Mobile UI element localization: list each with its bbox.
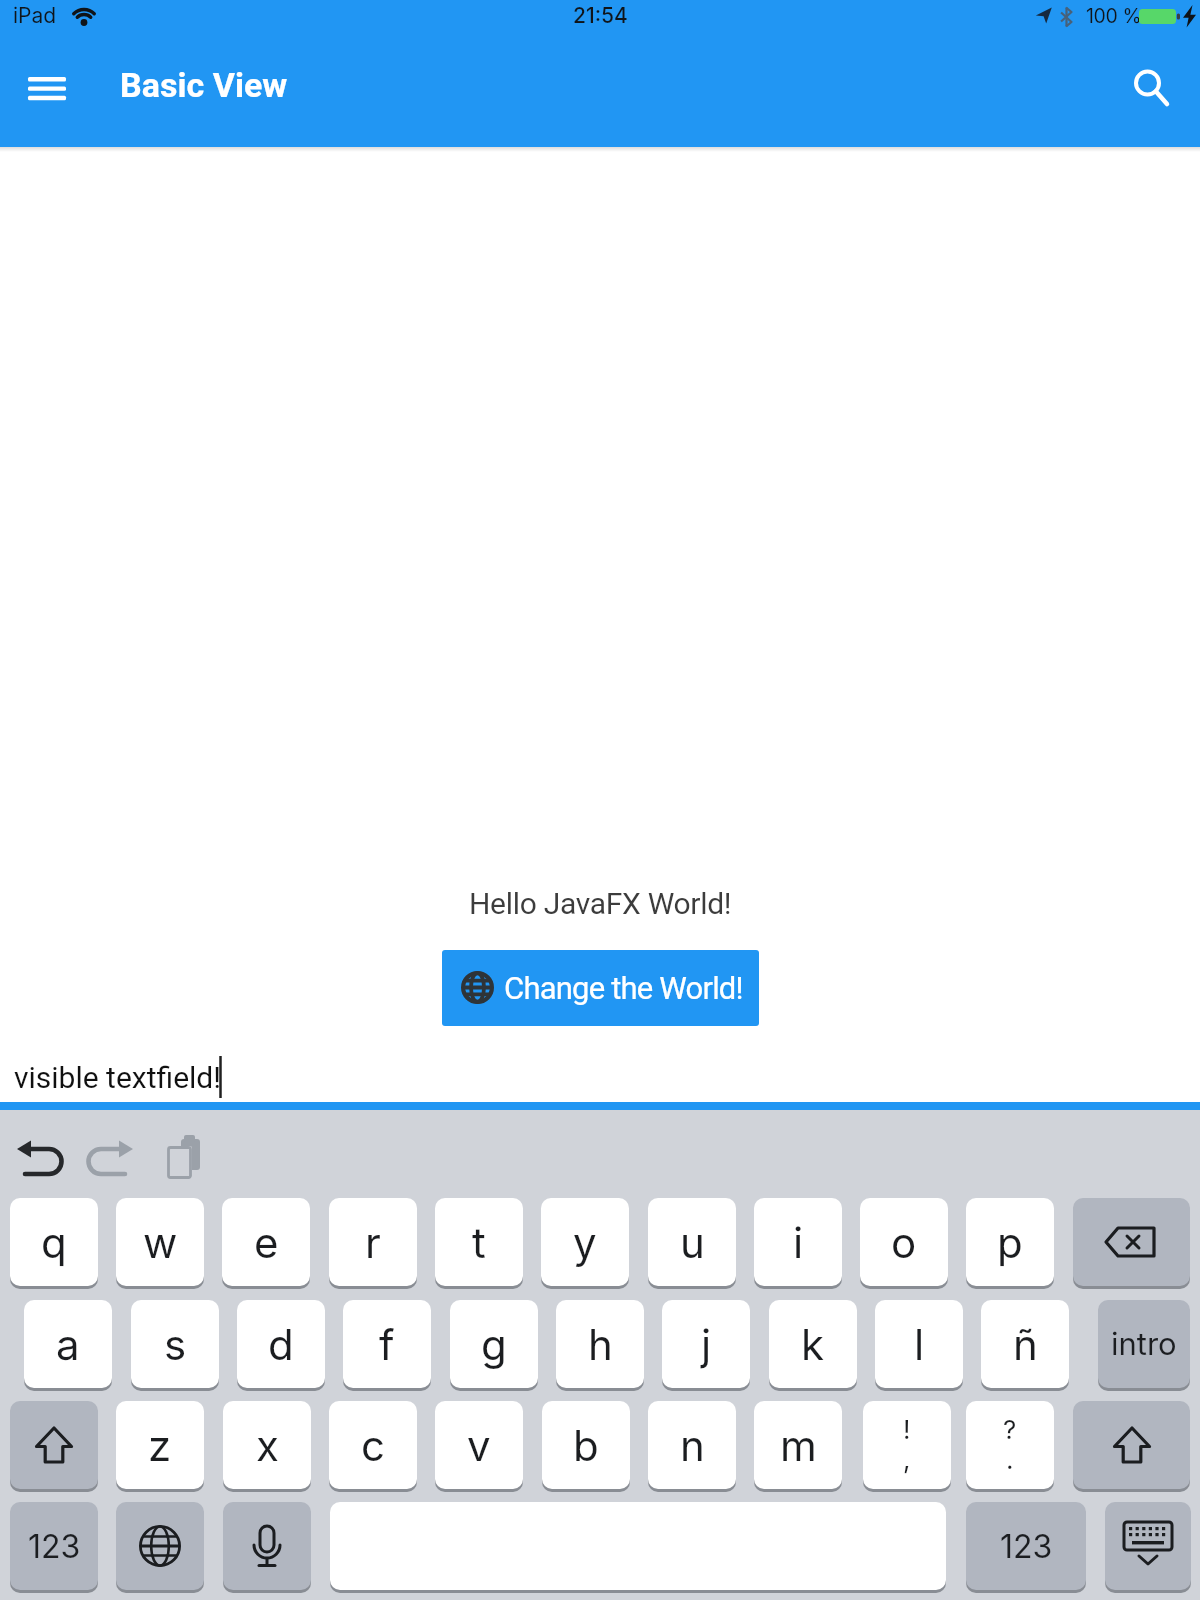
staticText: 123	[28, 1527, 81, 1566]
button[interactable]: k	[769, 1300, 857, 1388]
button[interactable]: intro	[1098, 1300, 1190, 1388]
button[interactable]: j	[662, 1300, 750, 1388]
staticText: .	[1006, 1444, 1014, 1475]
staticText: Change the World!	[504, 970, 743, 1006]
button[interactable]: z	[116, 1401, 204, 1489]
staticText: intro	[1111, 1325, 1177, 1363]
button[interactable]: f	[343, 1300, 431, 1388]
button[interactable]	[223, 1502, 311, 1590]
button[interactable]	[84, 1132, 138, 1184]
button[interactable]: q	[10, 1198, 98, 1286]
staticText: f	[379, 1319, 395, 1370]
button[interactable]: 123	[966, 1502, 1086, 1590]
button[interactable]	[10, 1401, 98, 1489]
staticText: z	[148, 1420, 172, 1471]
staticText: r	[365, 1217, 381, 1268]
staticText: c	[361, 1420, 385, 1471]
button[interactable]	[1073, 1198, 1190, 1286]
button[interactable]: a	[24, 1300, 112, 1388]
button[interactable]: d	[237, 1300, 325, 1388]
staticText: d	[268, 1319, 294, 1370]
staticText: q	[41, 1217, 67, 1268]
button[interactable]	[0, 1040, 1200, 1102]
button[interactable]: v	[435, 1401, 523, 1489]
button[interactable]: x	[223, 1401, 311, 1489]
staticText: e	[254, 1217, 279, 1268]
staticText: 100 %	[1086, 4, 1142, 28]
staticText: p	[997, 1217, 1023, 1268]
button[interactable]: 123	[10, 1502, 98, 1590]
button[interactable]: e	[222, 1198, 310, 1286]
staticText: v	[467, 1420, 491, 1471]
button[interactable]: w	[116, 1198, 204, 1286]
button[interactable]: b	[542, 1401, 630, 1489]
button[interactable]: o	[860, 1198, 948, 1286]
staticText: l	[914, 1319, 925, 1370]
staticText: y	[573, 1217, 597, 1268]
staticText: iPad	[13, 3, 57, 28]
staticText: i	[793, 1217, 804, 1268]
button[interactable]: l	[875, 1300, 963, 1388]
button[interactable]: m	[754, 1401, 842, 1489]
staticText: 21:54	[573, 3, 628, 28]
staticText: w	[143, 1217, 178, 1268]
button[interactable]: c	[329, 1401, 417, 1489]
button[interactable]: u	[648, 1198, 736, 1286]
staticText: u	[680, 1217, 705, 1268]
button[interactable]: ?	[966, 1401, 1054, 1489]
staticText: h	[588, 1319, 613, 1370]
button[interactable]: t	[435, 1198, 523, 1286]
staticText: k	[801, 1319, 825, 1370]
button[interactable]	[116, 1502, 204, 1590]
staticText: ñ	[1013, 1319, 1038, 1370]
button[interactable]	[158, 1132, 212, 1184]
staticText: n	[680, 1420, 705, 1471]
staticText: t	[472, 1217, 486, 1268]
button[interactable]: ñ	[981, 1300, 1069, 1388]
staticText: visible textfield!	[14, 1060, 221, 1095]
button[interactable]: Change the World!	[442, 950, 759, 1026]
staticText: o	[891, 1217, 917, 1268]
staticText: Hello JavaFX World!	[469, 886, 732, 921]
staticText: Basic View	[120, 65, 288, 105]
button[interactable]	[1073, 1401, 1190, 1489]
button[interactable]: i	[754, 1198, 842, 1286]
button[interactable]: s	[131, 1300, 219, 1388]
staticText: 123	[1000, 1527, 1053, 1566]
button[interactable]: h	[556, 1300, 644, 1388]
staticText: j	[701, 1319, 712, 1370]
button[interactable]	[1124, 60, 1172, 108]
button[interactable]: n	[648, 1401, 736, 1489]
button[interactable]	[20, 66, 74, 110]
button[interactable]	[1105, 1502, 1191, 1590]
button[interactable]: g	[450, 1300, 538, 1388]
staticText: m	[780, 1420, 817, 1471]
staticText: s	[164, 1319, 187, 1370]
staticText: a	[56, 1319, 80, 1370]
button[interactable]	[12, 1132, 66, 1184]
button[interactable]	[330, 1502, 946, 1590]
staticText: ?	[1003, 1414, 1017, 1445]
staticText: !	[903, 1414, 911, 1445]
staticText: x	[256, 1420, 279, 1471]
button[interactable]: !	[863, 1401, 951, 1489]
staticText: b	[573, 1420, 599, 1471]
button[interactable]: r	[329, 1198, 417, 1286]
button[interactable]: y	[541, 1198, 629, 1286]
staticText: ,	[903, 1444, 911, 1475]
staticText: g	[481, 1319, 507, 1370]
button[interactable]: p	[966, 1198, 1054, 1286]
